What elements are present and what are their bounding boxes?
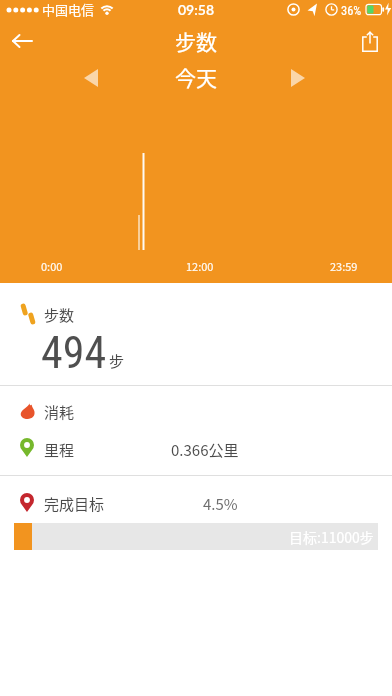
staticText: 36% [341,3,362,18]
button[interactable]: 完成目标 [0,486,392,522]
staticText: 494 [41,327,107,379]
button[interactable]: 今天 [175,62,217,92]
button[interactable]: 步数 [0,295,392,385]
button[interactable] [353,24,387,58]
staticText: 4.5% [203,493,238,515]
staticText: 0:00 [41,258,63,274]
button[interactable]: 里程 [0,430,392,470]
staticText: 0.366公里 [171,439,239,461]
staticText: 消耗 [44,401,75,423]
staticText: 步数 [175,26,217,56]
staticText: 完成目标 [44,493,105,515]
staticText: 23:59 [330,258,358,274]
button[interactable] [72,62,110,94]
staticText: 步 [109,350,125,372]
button[interactable]: 消耗 [0,392,392,430]
button[interactable] [279,62,317,94]
staticText: 里程 [44,439,75,461]
staticText: 12:00 [186,258,214,274]
staticText: 09:58 [178,1,215,18]
staticText: 目标:11000步 [289,527,374,547]
staticText: 中国电信 [42,0,95,19]
staticText: 步数 [44,304,75,326]
button[interactable] [0,24,44,58]
